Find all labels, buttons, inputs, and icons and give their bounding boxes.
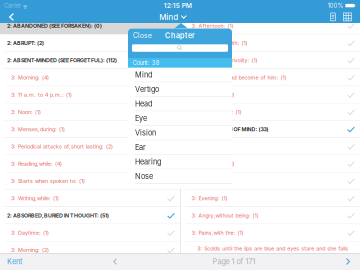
staticText: Mind <box>135 70 152 79</box>
button[interactable]: Previous page <box>106 253 124 270</box>
staticText: 3: Noon: (1) <box>11 109 41 115</box>
button[interactable]: 3: Children,in: (1) <box>181 86 360 103</box>
button[interactable]: 3: Alternating with: (1) <box>181 34 360 52</box>
button[interactable]: 3: Morning: (2) <box>0 241 180 259</box>
button[interactable]: Kent <box>0 253 40 270</box>
staticText: Close <box>133 31 152 40</box>
button[interactable]: Next page <box>339 253 357 270</box>
staticText: Carrier <box>4 2 21 9</box>
staticText: 3: Starts when spoken to: (1) <box>11 178 85 184</box>
button[interactable]: 3: Forenoon: (1) <box>181 172 360 190</box>
button[interactable]: Mind <box>128 68 232 82</box>
staticText: 2: ABANDONED (SEE FORSAKEN): (0) <box>7 23 102 29</box>
staticText: Count: 38 <box>133 59 160 66</box>
staticText: 3: Periodical attacks of,short lasting: … <box>11 143 113 150</box>
button[interactable]: 3: Evening: (1) <box>181 190 360 207</box>
button[interactable]: 3: Scolds until the lips are blue and ey… <box>181 241 360 259</box>
staticText: 3: Waking,on: (1) <box>192 161 235 167</box>
staticText: Kent <box>7 257 22 266</box>
button[interactable]: 3: Asks what had become of him: (1) <box>181 69 360 86</box>
staticText: Vertigo <box>135 85 159 94</box>
staticText: 3: Alternating with: (1) <box>192 40 248 46</box>
button[interactable]: 3: 11 a.m. to 4 p.m.: (1) <box>0 86 180 103</box>
button[interactable]: Vertigo <box>128 82 232 97</box>
button[interactable]: 3: Sadness,with: (1) <box>181 103 360 121</box>
button[interactable]: 3: Afternoon: (1) <box>181 17 360 34</box>
button[interactable]: Grid <box>340 11 355 23</box>
staticText: Page 1 of 171 <box>212 257 255 266</box>
button[interactable]: Back <box>3 11 20 23</box>
staticText: Hearing <box>135 157 161 166</box>
button[interactable]: 2: ABSORBED,BURIED IN THOUGHT: (51) <box>0 207 180 224</box>
staticText: 2: ABRUPT: (2) <box>7 40 44 46</box>
staticText: 3: Daytime: (1) <box>11 230 49 236</box>
staticText: Head <box>135 99 152 108</box>
staticText: Ear <box>135 143 146 152</box>
staticText: 2: ABSTRACTION OF MIND: (33) <box>188 126 269 133</box>
button[interactable]: 2: ABRUPT: (2) <box>0 34 180 52</box>
button[interactable]: 3: Periodical attacks of,short lasting: … <box>0 138 180 155</box>
staticText: 3: Writing,while: (1) <box>11 195 59 202</box>
staticText: 3: Angry,without being: (1) <box>192 212 259 219</box>
button[interactable]: 3: Reading,while: (4) <box>0 155 180 172</box>
staticText: Nose <box>135 172 153 181</box>
staticText: 3: Menses,during: (1) <box>11 126 65 133</box>
button[interactable]: 2: ABANDONED (SEE FORSAKEN): (0) <box>0 17 180 34</box>
button[interactable]: 3: Waking,on: (1) <box>181 155 360 172</box>
button[interactable]: 3: Angry,without being: (1) <box>181 207 360 224</box>
button[interactable]: 3: Laughing at frivolity: (1) <box>181 52 360 69</box>
staticText: 3: Morning: (4) <box>11 74 49 81</box>
button[interactable]: 3: Noon: (1) <box>0 103 180 121</box>
staticText: Chapter <box>165 31 195 40</box>
button[interactable]: 3: Writing,while: (1) <box>0 190 180 207</box>
button[interactable]: Mind <box>159 11 187 23</box>
staticText: 2: ABSENT-MINDED (SEE FORGETFUL): (112) <box>7 57 117 64</box>
staticText: Eye <box>135 114 147 123</box>
button[interactable]: Hearing <box>128 155 232 169</box>
staticText: 100% <box>327 2 343 9</box>
button[interactable]: Vision <box>128 126 232 140</box>
staticText: 3: Scolds until the lips are blue and ey… <box>197 245 348 258</box>
button[interactable]: Document <box>326 11 340 23</box>
staticText: Mind <box>159 12 178 22</box>
button[interactable]: Eye <box>128 111 232 126</box>
button[interactable]: 2: ABSTRACTION OF MIND: (33) <box>181 121 360 138</box>
button[interactable]: 2: ABSENT-MINDED (SEE FORGETFUL): (112) <box>0 52 180 69</box>
staticText: 3: Children,in: (1) <box>192 92 235 98</box>
staticText: 3: Afternoon: (1) <box>192 23 234 29</box>
staticText: 3: Pains,with the: (1) <box>192 230 244 236</box>
staticText: 12:15 PM <box>164 1 192 10</box>
button[interactable]: 3: Morning: (4) <box>0 69 180 86</box>
staticText: 3: Forenoon: (1) <box>192 178 232 184</box>
button[interactable]: 3: Daytime: (1) <box>0 224 180 241</box>
staticText: 3: 11 a.m. to 4 p.m.: (1) <box>11 92 72 98</box>
staticText: 2: ABSORBED,BURIED IN THOUGHT: (51) <box>7 212 109 219</box>
button[interactable]: Ear <box>128 140 232 155</box>
button[interactable]: 3: Starts when spoken to: (1) <box>0 172 180 190</box>
button[interactable]: Close <box>128 28 156 42</box>
button[interactable]: 3: Menses,during: (1) <box>0 121 180 138</box>
staticText: 3: Reading,while: (4) <box>11 161 62 167</box>
staticText: 3: Sadness,with: (1) <box>192 109 242 115</box>
staticText: 3: Asks what had become of him: (1) <box>192 74 287 81</box>
button[interactable]: Nose <box>128 169 232 184</box>
staticText: Vision <box>135 128 156 137</box>
staticText: 3: Morning: (2) <box>11 247 49 253</box>
button[interactable]: 3: Pains,with the: (1) <box>181 224 360 241</box>
button[interactable]: Head <box>128 97 232 111</box>
staticText: 3: Evening: (1) <box>192 195 228 202</box>
staticText: 3: Laughing at frivolity: (1) <box>192 57 258 64</box>
